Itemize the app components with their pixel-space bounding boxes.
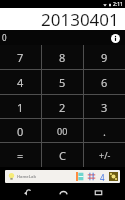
button[interactable]: 4 xyxy=(0,70,41,95)
button[interactable]: Advertisement banner xyxy=(5,170,120,183)
staticText: 2:11 xyxy=(113,1,123,8)
button[interactable]: 9 xyxy=(84,45,125,70)
staticText: C xyxy=(59,148,66,163)
button[interactable]: Recents xyxy=(89,185,107,200)
staticText: 4 xyxy=(17,75,24,90)
staticText: 5 xyxy=(59,75,66,90)
staticText: 3 xyxy=(101,100,108,115)
button[interactable]: 3 xyxy=(84,95,125,119)
staticText: = xyxy=(17,148,24,163)
button[interactable]: 7 xyxy=(0,45,41,70)
button[interactable]: 1 xyxy=(0,95,41,119)
button[interactable]: 2 xyxy=(42,95,83,119)
button[interactable]: . xyxy=(84,119,125,143)
staticText: 1 xyxy=(17,100,24,115)
button[interactable]: Home xyxy=(54,185,72,200)
staticText: 4 xyxy=(100,172,105,181)
staticText: +/- xyxy=(99,149,111,161)
staticText: HameLab xyxy=(17,174,36,179)
button[interactable]: C xyxy=(42,143,83,167)
staticText: . xyxy=(103,124,106,139)
button[interactable]: Info xyxy=(109,32,121,44)
staticText: 2 xyxy=(59,100,66,115)
button[interactable]: Back xyxy=(18,185,36,200)
button[interactable]: 0 xyxy=(0,119,41,143)
staticText: 0 xyxy=(17,124,24,139)
button[interactable]: = xyxy=(0,143,41,167)
button[interactable]: +/- xyxy=(84,143,125,167)
staticText: 20130401 xyxy=(41,8,119,30)
button[interactable]: 6 xyxy=(84,70,125,95)
button[interactable]: 5 xyxy=(42,70,83,95)
staticText: 00 xyxy=(57,125,68,137)
button[interactable]: 00 xyxy=(42,119,83,143)
staticText: 9 xyxy=(101,50,108,65)
staticText: 7 xyxy=(17,50,24,65)
staticText: 8 xyxy=(59,50,66,65)
staticText: 6 xyxy=(101,75,108,90)
staticText: 0 xyxy=(2,32,7,43)
button[interactable]: 8 xyxy=(42,45,83,70)
